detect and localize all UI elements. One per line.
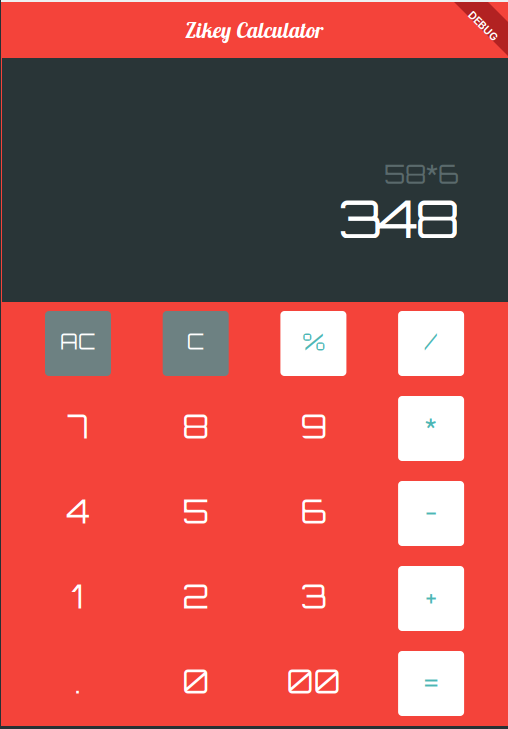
staticText: 9 bbox=[300, 406, 326, 446]
button[interactable]: . bbox=[19, 639, 137, 724]
button[interactable]: C bbox=[163, 311, 229, 376]
staticText: 00 bbox=[286, 661, 340, 701]
button[interactable]: 8 bbox=[137, 384, 254, 469]
staticText: = bbox=[424, 666, 439, 696]
staticText: 1 bbox=[71, 576, 84, 616]
staticText: 8 bbox=[182, 406, 209, 446]
staticText: 4 bbox=[66, 491, 89, 531]
button[interactable]: AC bbox=[45, 311, 111, 376]
button[interactable]: 1 bbox=[19, 554, 137, 639]
staticText: + bbox=[426, 581, 436, 611]
button[interactable]: = bbox=[398, 651, 464, 716]
staticText: 0 bbox=[182, 661, 209, 701]
staticText: AC bbox=[60, 328, 96, 355]
button[interactable]: 5 bbox=[137, 469, 254, 554]
button[interactable]: 0 bbox=[137, 639, 254, 724]
button[interactable]: / bbox=[398, 311, 464, 376]
staticText: C bbox=[187, 328, 205, 355]
staticText: - bbox=[425, 496, 437, 526]
staticText: Zikey Calculator bbox=[185, 17, 323, 43]
staticText: / bbox=[425, 326, 438, 356]
staticText: 3 bbox=[300, 576, 326, 616]
staticText: 7 bbox=[67, 406, 88, 446]
staticText: DEBUG bbox=[464, 19, 501, 32]
button[interactable]: 9 bbox=[254, 384, 372, 469]
button[interactable]: 3 bbox=[254, 554, 372, 639]
staticText: . bbox=[74, 661, 81, 701]
button[interactable]: 7 bbox=[19, 384, 137, 469]
staticText: 6 bbox=[300, 491, 326, 531]
button[interactable]: 6 bbox=[254, 469, 372, 554]
button[interactable]: - bbox=[398, 481, 464, 546]
staticText: * bbox=[425, 411, 437, 441]
button[interactable]: 00 bbox=[254, 639, 372, 724]
button[interactable]: + bbox=[398, 566, 464, 631]
staticText: 5 bbox=[182, 491, 209, 531]
staticText: % bbox=[302, 326, 325, 356]
button[interactable]: * bbox=[398, 396, 464, 461]
button[interactable]: % bbox=[280, 311, 346, 376]
staticText: 58*6 bbox=[384, 158, 459, 190]
staticText: 2 bbox=[182, 576, 209, 616]
staticText: 348 bbox=[338, 185, 459, 251]
button[interactable]: 2 bbox=[137, 554, 254, 639]
button[interactable]: 4 bbox=[19, 469, 137, 554]
